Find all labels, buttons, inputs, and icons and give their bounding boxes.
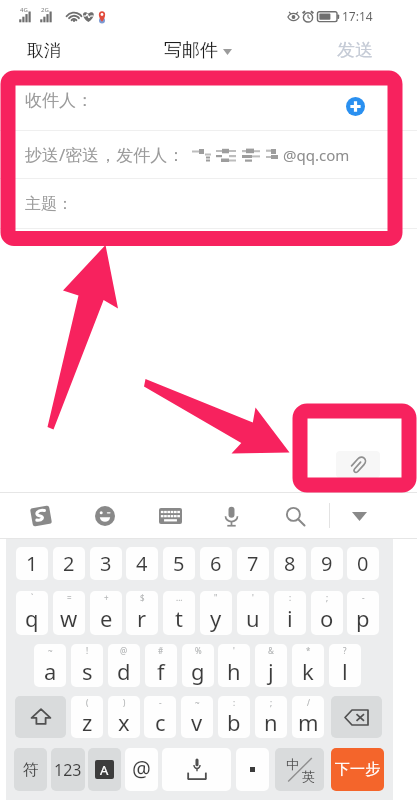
staticText: - [362, 592, 365, 603]
button[interactable]: Search [276, 497, 314, 535]
button[interactable]: 9 [311, 547, 343, 580]
button[interactable] [162, 748, 231, 791]
button[interactable]: Keyboard layout [151, 497, 189, 535]
staticText: ~ [48, 645, 53, 656]
button[interactable]: 写邮件 [158, 33, 238, 68]
button[interactable]: @ [108, 644, 140, 687]
button[interactable]: ! [71, 644, 103, 687]
button[interactable]: % [182, 644, 214, 687]
button[interactable]: 符 [14, 748, 47, 791]
button[interactable]: ( [71, 696, 103, 738]
button[interactable]: : [218, 696, 250, 738]
button[interactable]: - [347, 591, 379, 635]
button[interactable]: ` [16, 591, 48, 635]
button[interactable]: = [53, 591, 85, 635]
staticText: 中 [286, 756, 299, 772]
button[interactable]: Shift [15, 696, 66, 738]
button[interactable] [331, 696, 382, 738]
button[interactable]: 123 [51, 748, 85, 791]
staticText: : [289, 592, 292, 603]
button[interactable]: 1 [16, 547, 48, 580]
staticText: q [25, 603, 39, 633]
button[interactable]: ~ [34, 644, 66, 687]
button[interactable]: Backspace [331, 696, 382, 738]
button[interactable]: 下一步 [331, 748, 384, 791]
staticText: ) [123, 697, 126, 708]
staticText: * [306, 645, 311, 656]
staticText: 4G [20, 6, 28, 14]
button[interactable]: # [145, 644, 177, 687]
staticText: % [195, 645, 202, 656]
button[interactable]: @ [125, 748, 158, 791]
staticText: 2 [63, 550, 75, 577]
button[interactable]: + [90, 591, 122, 635]
staticText: x [118, 707, 130, 737]
button[interactable]: ~ [181, 696, 213, 738]
button[interactable]: ; [255, 696, 287, 738]
button[interactable]: 6 [200, 547, 232, 580]
staticText: ! [86, 645, 89, 656]
button[interactable]: ) [108, 696, 140, 738]
button[interactable]: ... [163, 591, 195, 635]
button[interactable]: 收件人： [0, 71, 417, 130]
button[interactable]: Hide keyboard [341, 500, 377, 532]
staticText: # [158, 645, 164, 656]
button[interactable]: 0 [347, 547, 379, 580]
button[interactable] [236, 748, 269, 791]
staticText: u [246, 603, 260, 633]
button[interactable]: 5 [163, 547, 195, 580]
button[interactable]: Period [236, 748, 269, 791]
staticText: @qq.com [283, 145, 350, 165]
button[interactable]: $ [126, 591, 158, 635]
button[interactable]: / [292, 696, 324, 738]
button[interactable]: Capital letters [88, 748, 121, 791]
button[interactable]: 2 [53, 547, 85, 580]
staticText: 符 [23, 760, 39, 780]
button[interactable]: ; [311, 591, 343, 635]
staticText: / [307, 697, 310, 708]
staticText: p [356, 603, 370, 633]
button[interactable]: 抄送/密送，发件人： [0, 131, 417, 178]
staticText: t [175, 603, 183, 633]
button[interactable]: ' [237, 591, 269, 635]
staticText: 1 [26, 550, 38, 577]
button[interactable] [15, 696, 66, 738]
button[interactable]: Input method [22, 497, 60, 535]
staticText: b [227, 707, 241, 737]
button[interactable]: Space [162, 748, 231, 791]
button[interactable] [275, 748, 324, 791]
button[interactable]: Voice input [212, 497, 250, 535]
staticText: = [67, 592, 72, 603]
button[interactable]: Attach file [336, 451, 380, 478]
button[interactable]: ' [218, 644, 250, 687]
staticText: + [104, 592, 109, 603]
button[interactable]: & [255, 644, 287, 687]
button[interactable]: 主题： [0, 179, 417, 228]
button[interactable]: : [274, 591, 306, 635]
staticText: 6 [210, 550, 222, 577]
staticText: w [60, 603, 78, 633]
staticText: g [191, 656, 205, 686]
staticText: j [268, 656, 274, 686]
button[interactable] [88, 748, 121, 791]
button[interactable]: Switch Chinese English [275, 748, 324, 791]
staticText: a [44, 656, 57, 686]
staticText: 英 [302, 768, 315, 784]
staticText: 4 [136, 550, 148, 577]
button[interactable]: Add recipient [346, 97, 365, 116]
staticText: f [157, 656, 165, 686]
button[interactable]: 发送 [331, 33, 379, 68]
button[interactable]: Emoji [86, 497, 124, 535]
button[interactable]: 3 [90, 547, 122, 580]
button[interactable]: " [200, 591, 232, 635]
button[interactable]: - [144, 696, 176, 738]
button[interactable]: 7 [237, 547, 269, 580]
staticText: ' [233, 645, 235, 656]
button[interactable]: 取消 [15, 32, 73, 69]
button[interactable]: ? [329, 644, 361, 687]
staticText: ~ [195, 697, 200, 708]
staticText: n [264, 707, 278, 737]
button[interactable]: 4 [126, 547, 158, 580]
button[interactable]: * [292, 644, 324, 687]
button[interactable]: 8 [274, 547, 306, 580]
